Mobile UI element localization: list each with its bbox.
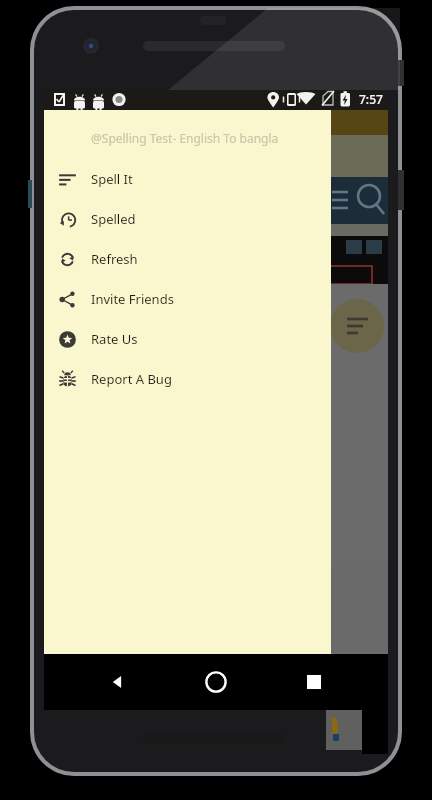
staticText: @Spelling Test- English To bangla xyxy=(91,130,279,146)
staticText: Refresh xyxy=(91,250,138,268)
button[interactable]: Report A Bug xyxy=(44,359,331,399)
staticText: Spelled xyxy=(91,210,136,228)
button[interactable]: Spell It xyxy=(44,159,331,199)
staticText: Spell It xyxy=(91,170,133,188)
staticText: 7:57 xyxy=(359,91,383,107)
button[interactable]: Invite Friends xyxy=(44,279,331,319)
button[interactable]: Home xyxy=(192,658,240,706)
button[interactable]: Rate Us xyxy=(44,319,331,359)
staticText: Report A Bug xyxy=(91,370,172,388)
button[interactable]: Spelled xyxy=(44,199,331,239)
button[interactable]: Back xyxy=(94,658,142,706)
staticText: Rate Us xyxy=(91,330,138,348)
button[interactable]: Refresh xyxy=(44,239,331,279)
button[interactable]: Recent apps xyxy=(290,658,338,706)
staticText: Invite Friends xyxy=(91,290,174,308)
